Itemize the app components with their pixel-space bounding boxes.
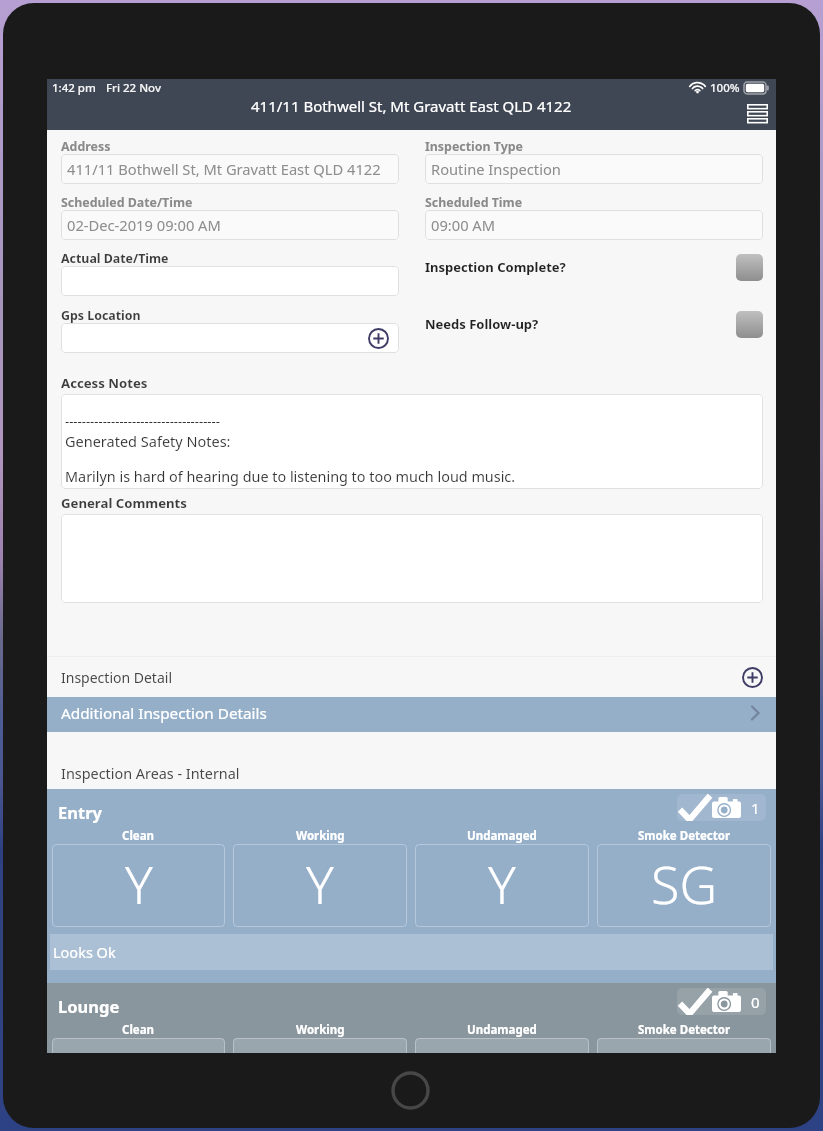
button[interactable]: 411/11 Bothwell St, Mt Gravatt East QLD … [61,154,399,184]
staticText: General Comments [61,494,187,512]
staticText: Needs Follow-up? [425,315,539,333]
button[interactable] [233,1038,407,1053]
staticText: Looks Ok [53,942,116,962]
staticText: Inspection Type [425,138,524,155]
button[interactable]: 0 [677,988,766,1015]
button[interactable]: SG [597,844,771,927]
button[interactable]: Additional Inspection Details [47,697,776,732]
staticText: Address [61,138,111,155]
button[interactable]: 1 [677,794,766,821]
button[interactable] [415,1038,589,1053]
button[interactable]: Routine Inspection [425,154,763,184]
staticText: 09:00 AM [431,215,496,235]
staticText: Gps Location [61,307,141,324]
staticText: Generated Safety Notes: [65,431,231,451]
staticText: Y [488,848,516,919]
button[interactable]: ------------------------------------- [61,394,763,489]
staticText: Inspection Areas - Internal [61,764,240,784]
staticText: SG [651,848,718,919]
staticText: Additional Inspection Details [61,703,267,724]
staticText: Working [296,828,345,844]
staticText: Undamaged [467,1022,537,1038]
button[interactable]: Y [233,844,407,927]
button[interactable]: Menu [740,101,774,128]
staticText: 0 [751,992,760,1012]
staticText: Entry [58,801,102,823]
button[interactable]: Inspection Detail [47,657,776,697]
button[interactable]: 02-Dec-2019 09:00 AM [61,210,399,240]
staticText: ------------------------------------- [65,412,220,430]
staticText: Scheduled Time [425,194,523,211]
staticText: Smoke Detector [638,828,731,844]
staticText: Marilyn is hard of hearing due to listen… [65,467,516,487]
staticText: Lounge [58,995,120,1017]
staticText: Clean [122,828,155,844]
staticText: Inspection Detail [61,668,173,687]
staticText: 100% [710,80,740,96]
button[interactable]: Inspection Complete? [425,253,763,281]
button[interactable] [61,266,399,296]
button[interactable]: Y [415,844,589,927]
staticText: Undamaged [467,828,537,844]
button[interactable] [61,514,763,603]
staticText: Working [296,1022,345,1038]
staticText: Y [306,848,334,919]
button[interactable]: 09:00 AM [425,210,763,240]
button[interactable] [597,1038,771,1053]
staticText: Clean [122,1022,155,1038]
staticText: Routine Inspection [431,159,561,179]
staticText: 02-Dec-2019 09:00 AM [67,215,221,235]
staticText: Scheduled Date/Time [61,194,193,211]
button[interactable] [61,323,399,353]
staticText: 411/11 Bothwell St, Mt Gravatt East QLD … [67,159,381,179]
staticText: Y [125,848,153,919]
staticText: Actual Date/Time [61,250,169,267]
staticText: Smoke Detector [638,1022,731,1038]
button[interactable] [52,1038,225,1053]
staticText: Fri 22 Nov [106,80,161,96]
button[interactable]: Y [52,844,225,927]
button[interactable]: Looks Ok [50,934,773,970]
staticText: Inspection Complete? [425,258,566,276]
staticText: 1 [751,798,760,818]
staticText: 411/11 Bothwell St, Mt Gravatt East QLD … [251,96,572,116]
staticText: 1:42 pm [52,80,96,96]
staticText: Access Notes [61,374,148,392]
button[interactable]: Needs Follow-up? [425,310,763,338]
